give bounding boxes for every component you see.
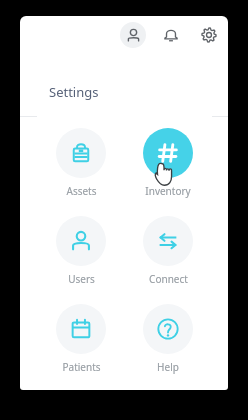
staticText: Assets (66, 184, 97, 198)
button[interactable]: Patients (42, 304, 120, 374)
button[interactable]: Connect (129, 216, 207, 286)
button[interactable]: Help (129, 304, 207, 374)
button[interactable]: Inventory (129, 128, 207, 198)
staticText: Inventory (145, 184, 191, 198)
button[interactable]: Settings (196, 22, 222, 48)
staticText: Patients (62, 360, 101, 374)
button[interactable]: Users (42, 216, 120, 286)
staticText: Users (68, 272, 95, 286)
staticText: Help (157, 360, 179, 374)
button[interactable]: Account (120, 22, 146, 48)
button[interactable]: Notifications (158, 22, 184, 48)
staticText: Settings (49, 83, 99, 101)
button[interactable]: Assets (42, 128, 120, 198)
staticText: Connect (149, 272, 188, 286)
